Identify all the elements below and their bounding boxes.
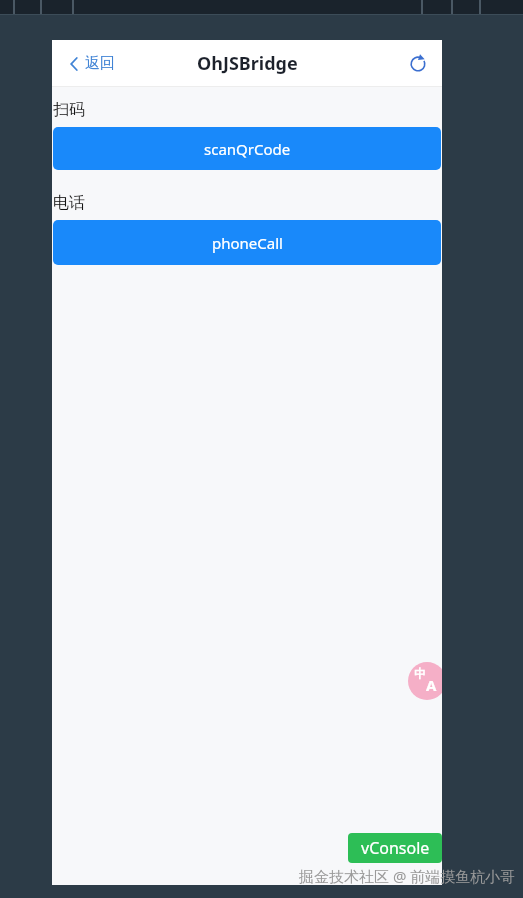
staticText: 扫码 — [53, 100, 85, 120]
staticText: 中 — [414, 666, 426, 681]
staticText: 掘金技术社区 @ 前端摸鱼杭小哥 — [299, 866, 516, 886]
button[interactable]: 中 — [408, 662, 442, 700]
button[interactable] — [409, 54, 427, 72]
staticText: vConsole — [361, 837, 430, 859]
staticText: scanQrCode — [204, 139, 291, 159]
button[interactable]: vConsole — [348, 833, 442, 863]
staticText: 电话 — [53, 193, 85, 213]
staticText: OhJSBridge — [197, 51, 298, 76]
button[interactable]: phoneCall — [53, 220, 441, 265]
button[interactable]: scanQrCode — [53, 127, 441, 170]
button[interactable]: 返回 — [70, 54, 115, 73]
staticText: A — [426, 675, 437, 695]
staticText: phoneCall — [212, 233, 283, 253]
staticText: 返回 — [85, 54, 115, 73]
